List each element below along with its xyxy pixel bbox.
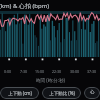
staticText: 上下動 (cm): [8, 90, 32, 96]
staticText: 15:00: [35, 69, 44, 74]
staticText: 22:30: [52, 69, 61, 74]
staticText: 0:00: [4, 69, 11, 74]
staticText: (km) & 心拍 (bpm): [0, 2, 50, 10]
staticText: 上下動比 (%): [49, 90, 75, 96]
staticText: 時間 (時:分:秒): [36, 77, 65, 83]
staticText: 心: [90, 90, 95, 96]
staticText: 30:00: [70, 69, 79, 74]
button[interactable]: 上下動比 (%): [42, 87, 81, 99]
staticText: 7:30: [20, 69, 27, 74]
staticText: 37:30: [87, 69, 96, 74]
button[interactable]: 心: [84, 87, 100, 99]
button[interactable]: 上下動 (cm): [0, 87, 39, 99]
